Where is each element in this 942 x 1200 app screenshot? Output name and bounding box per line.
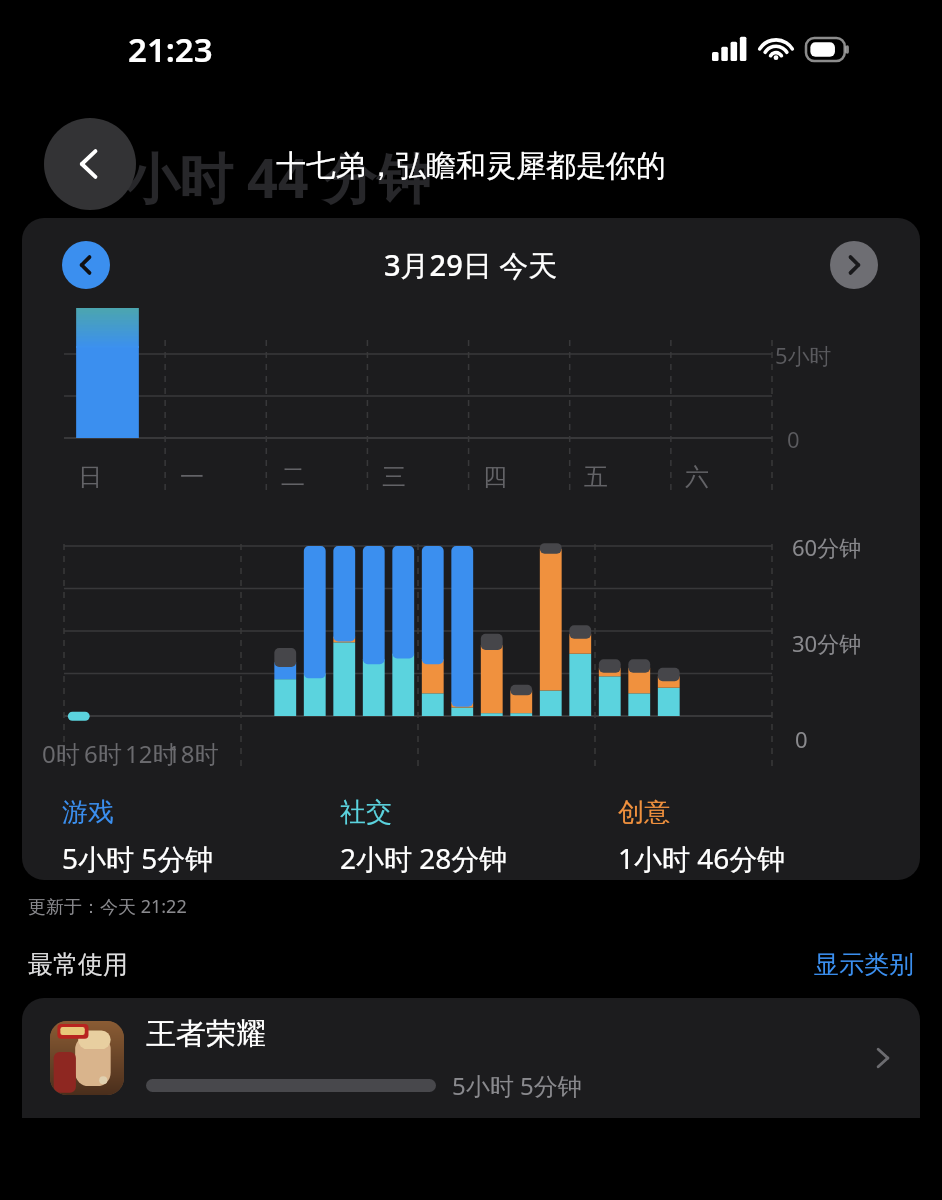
other: 详情: [872, 1047, 894, 1069]
staticText: 1小时 46分钟: [618, 839, 786, 877]
staticText: 四: [483, 462, 507, 492]
staticText: 显示类别: [814, 949, 914, 980]
staticText: 0: [787, 424, 800, 454]
staticText: 3月29日 今天: [384, 245, 558, 285]
staticText: 六: [685, 462, 709, 492]
staticText: 0时: [42, 737, 80, 770]
staticText: 0: [795, 724, 808, 754]
staticText: 5小时: [775, 340, 832, 370]
staticText: 社交: [340, 796, 392, 829]
staticText: 5小时 5分钟: [452, 1069, 582, 1102]
staticText: 更新于：今天 21:22: [28, 894, 187, 919]
staticText: 30分钟: [792, 628, 862, 658]
staticText: 三: [382, 462, 406, 492]
staticText: 2小时 28分钟: [340, 839, 508, 877]
button[interactable]: 王者荣耀: [22, 998, 920, 1118]
button[interactable]: 返回: [44, 118, 136, 210]
staticText: 五: [584, 462, 608, 492]
button[interactable]: 上一天: [62, 241, 110, 289]
staticText: 日: [78, 462, 102, 492]
staticText: 9 小时 44 分钟: [80, 140, 431, 214]
button[interactable]: 下一天: [830, 241, 878, 289]
staticText: 60分钟: [792, 532, 862, 562]
staticText: 一: [180, 462, 204, 492]
button[interactable]: 显示类别: [814, 949, 914, 980]
staticText: 6时: [84, 737, 122, 770]
staticText: 游戏: [62, 796, 114, 829]
staticText: 二: [281, 462, 305, 492]
staticText: 最常使用: [28, 949, 128, 980]
staticText: 5小时 5分钟: [62, 839, 214, 877]
staticText: 18时: [167, 737, 219, 770]
staticText: 创意: [618, 796, 670, 829]
staticText: 12时: [125, 737, 177, 770]
staticText: 21:23: [128, 27, 213, 72]
staticText: 十七弟，弘瞻和灵犀都是你的: [276, 147, 666, 185]
staticText: 王者荣耀: [146, 1015, 266, 1053]
